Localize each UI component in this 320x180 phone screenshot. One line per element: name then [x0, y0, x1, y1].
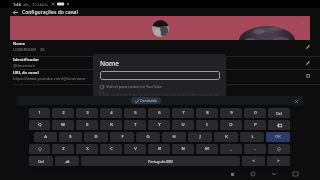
button[interactable]: Nome: [13, 40, 312, 53]
staticText: M: [205, 146, 209, 152]
button[interactable]: <: [242, 156, 265, 166]
staticText: V: [134, 146, 137, 152]
button[interactable]: Y: [148, 120, 170, 130]
button[interactable]: 2: [52, 108, 74, 118]
button[interactable]: O: [220, 120, 242, 130]
button[interactable]: >: [267, 156, 290, 166]
staticText: C: [110, 146, 113, 152]
staticText: A: [44, 134, 47, 140]
button[interactable]: H: [162, 132, 186, 142]
staticText: 1:46: [13, 2, 21, 7]
button[interactable]: URL do canal: [13, 69, 312, 82]
button[interactable]: 9: [220, 108, 242, 118]
button[interactable]: R: [100, 120, 122, 130]
button[interactable]: S: [59, 132, 82, 142]
staticText: 9: [230, 110, 233, 116]
staticText: Z: [62, 146, 65, 152]
staticText: 4: [110, 110, 113, 116]
staticText: 2: [62, 110, 65, 116]
staticText: P: [254, 122, 257, 128]
button[interactable]: Identificador: [13, 56, 312, 69]
staticText: Q: [38, 122, 42, 128]
button[interactable]: M: [196, 144, 218, 154]
staticText: .: [254, 146, 256, 152]
staticText: Identificador: [13, 57, 40, 62]
button[interactable]: Concluído: [131, 97, 161, 104]
button[interactable]: Ctrl: [29, 156, 53, 166]
button[interactable]: OK: [266, 132, 290, 142]
staticText: 6: [158, 110, 161, 116]
button[interactable]: Edit Identificador: [304, 59, 312, 67]
staticText: 10 kbit/s: [32, 2, 49, 7]
staticText: B: [158, 146, 161, 152]
button[interactable]: 7: [172, 108, 194, 118]
button[interactable]: [268, 144, 290, 154]
staticText: 3: [86, 110, 89, 116]
staticText: L: [251, 134, 254, 140]
button[interactable]: alt: [55, 156, 79, 166]
staticText: Y: [158, 122, 161, 128]
button[interactable]: V: [124, 144, 146, 154]
button[interactable]: Home: [249, 170, 257, 178]
button[interactable]: N: [172, 144, 194, 154]
button[interactable]: Channel avatar: [152, 20, 169, 37]
staticText: LONEROOM 38: [13, 47, 45, 52]
button[interactable]: [100, 71, 220, 80]
button[interactable]: ,: [220, 144, 242, 154]
button[interactable]: Switch keyboard: [291, 170, 299, 178]
button[interactable]: 0: [244, 108, 266, 118]
button[interactable]: Del: [268, 108, 290, 118]
staticText: 7: [182, 110, 185, 116]
button[interactable]: A: [34, 132, 57, 142]
staticText: Concluído: [140, 98, 157, 103]
button[interactable]: Hide keyboard: [270, 170, 278, 178]
staticText: H: [172, 134, 176, 140]
button[interactable]: K: [214, 132, 238, 142]
staticText: Ctrl: [38, 159, 44, 164]
button[interactable]: Português (BR): [81, 156, 240, 166]
staticText: https://www.youtube.com/@loneroom: [13, 76, 86, 81]
staticText: alt: [65, 159, 70, 164]
staticText: S: [69, 134, 72, 140]
button[interactable]: Q: [29, 120, 50, 130]
button[interactable]: G: [136, 132, 160, 142]
button[interactable]: 1: [29, 108, 50, 118]
button[interactable]: J: [188, 132, 212, 142]
button[interactable]: L: [240, 132, 264, 142]
button[interactable]: Back: [11, 8, 19, 16]
button[interactable]: I: [196, 120, 218, 130]
button[interactable]: 4: [100, 108, 122, 118]
staticText: K: [225, 134, 228, 140]
staticText: D: [94, 134, 98, 140]
button[interactable]: Edit Nome: [304, 43, 312, 51]
staticText: E: [86, 122, 89, 128]
staticText: W: [61, 122, 65, 128]
staticText: 8: [206, 110, 209, 116]
staticText: X: [86, 146, 89, 152]
button[interactable]: C: [100, 144, 122, 154]
staticText: I: [206, 122, 208, 128]
staticText: >: [277, 158, 280, 164]
button[interactable]: P: [244, 120, 266, 130]
button[interactable]: 5: [124, 108, 146, 118]
button[interactable]: 8: [196, 108, 218, 118]
button[interactable]: D: [84, 132, 108, 142]
button[interactable]: Close suggestions: [293, 98, 299, 104]
button[interactable]: F: [110, 132, 134, 142]
button[interactable]: B: [148, 144, 170, 154]
button[interactable]: .: [244, 144, 266, 154]
button[interactable]: [29, 144, 50, 154]
staticText: N: [181, 146, 185, 152]
button[interactable]: 3: [76, 108, 98, 118]
button[interactable]: Z: [52, 144, 74, 154]
button[interactable]: T: [124, 120, 146, 130]
button[interactable]: Copy URL do canal: [304, 72, 312, 80]
button[interactable]: E: [76, 120, 98, 130]
button[interactable]: W: [52, 120, 74, 130]
button[interactable]: X: [76, 144, 98, 154]
staticText: 5: [134, 110, 137, 116]
button[interactable]: [268, 120, 290, 130]
button[interactable]: 6: [148, 108, 170, 118]
button[interactable]: Recents: [228, 170, 236, 178]
button[interactable]: U: [172, 120, 194, 130]
